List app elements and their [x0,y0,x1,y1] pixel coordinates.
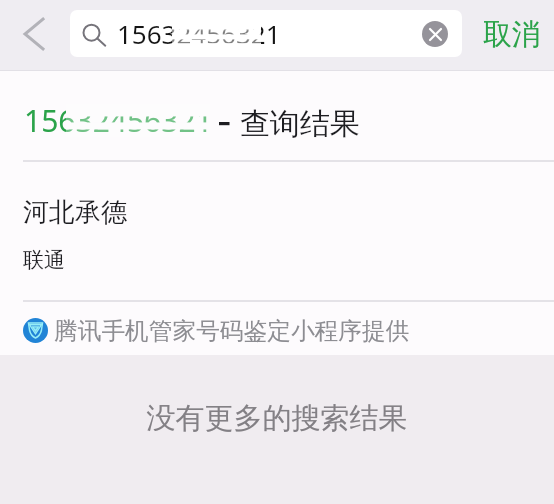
staticText: 15632456321 [24,100,213,141]
staticText: 查询结果 [240,105,360,143]
staticText: 没有更多的搜索结果 [0,400,554,437]
button[interactable]: 取消 [470,0,554,68]
staticText: 联通 [23,247,65,273]
button[interactable]: 15632456321 [70,10,462,57]
staticText: 河北承德 [23,196,127,229]
button[interactable]: Clear search text [422,21,448,47]
staticText: 取消 [483,16,541,53]
button[interactable]: 腾讯手机管家号码鉴定小程序提供 [0,306,554,355]
staticText: 腾讯手机管家号码鉴定小程序提供 [54,316,410,346]
staticText: 15632456321 [117,16,281,51]
button[interactable]: Back [0,0,68,71]
